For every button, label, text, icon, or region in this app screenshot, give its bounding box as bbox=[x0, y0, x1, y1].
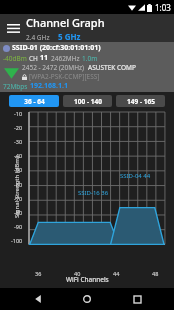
staticText: CH bbox=[29, 54, 38, 63]
staticText: -90 bbox=[14, 223, 23, 230]
staticText: -10 bbox=[14, 110, 23, 117]
staticText: 2452 - 2472 (20MHz) bbox=[22, 63, 85, 72]
staticText: 2.4 GHz bbox=[26, 33, 50, 42]
staticText: [WPA2-PSK-CCMP][ESS] bbox=[29, 72, 100, 81]
staticText: Channel Graph bbox=[26, 15, 105, 30]
button[interactable]: Home bbox=[75, 288, 99, 310]
staticText: 2462MHz bbox=[51, 54, 80, 63]
staticText: 5 GHz bbox=[58, 31, 81, 42]
staticText: SSID-04 44 bbox=[120, 172, 151, 180]
button[interactable]: 2.4 GHz bbox=[26, 33, 50, 42]
button[interactable]: Back bbox=[26, 288, 50, 310]
staticText: 48 bbox=[152, 270, 159, 277]
staticText: SSID-16 36 bbox=[78, 189, 109, 197]
staticText: SSID-01 (20:cf:30:01:01:01) bbox=[12, 43, 101, 53]
staticText: 1:03 bbox=[155, 2, 171, 13]
button[interactable]: Open navigation menu bbox=[3, 18, 23, 38]
staticText: -100 bbox=[11, 237, 23, 244]
button[interactable]: 5 GHz bbox=[58, 31, 81, 42]
button[interactable]: 36 - 64 bbox=[9, 95, 59, 107]
staticText: 149 - 165 bbox=[127, 97, 155, 106]
staticText: -30 bbox=[14, 138, 23, 145]
staticText: 44 bbox=[113, 270, 120, 277]
staticText: 11 bbox=[40, 53, 49, 63]
button[interactable]: 100 - 140 bbox=[63, 95, 112, 107]
staticText: ASUSTEK COMP bbox=[88, 63, 136, 72]
staticText: WiFi Channels bbox=[66, 275, 109, 284]
staticText: -60 bbox=[14, 181, 23, 188]
staticText: -20 bbox=[14, 124, 23, 131]
staticText: -70 bbox=[14, 195, 23, 202]
staticText: -40 bbox=[14, 152, 23, 159]
staticText: 36 bbox=[35, 270, 42, 277]
staticText: -50 bbox=[14, 166, 23, 173]
staticText: -40dBm bbox=[3, 54, 27, 63]
button[interactable]: 149 - 165 bbox=[116, 95, 165, 107]
staticText: 1.0m bbox=[82, 54, 98, 63]
staticText: 192.168.1.1 bbox=[30, 81, 68, 91]
button[interactable]: Recent apps bbox=[125, 288, 149, 310]
staticText: -80 bbox=[14, 209, 23, 216]
staticText: 36 - 64 bbox=[24, 97, 45, 106]
staticText: 40 bbox=[74, 270, 81, 277]
staticText: 72Mbps bbox=[3, 82, 28, 91]
staticText: 100 - 140 bbox=[74, 97, 102, 106]
staticText: Signal Strength (dBm) bbox=[13, 156, 21, 218]
button[interactable]: SSID-01 (20:cf:30:01:01:01) bbox=[0, 42, 174, 92]
